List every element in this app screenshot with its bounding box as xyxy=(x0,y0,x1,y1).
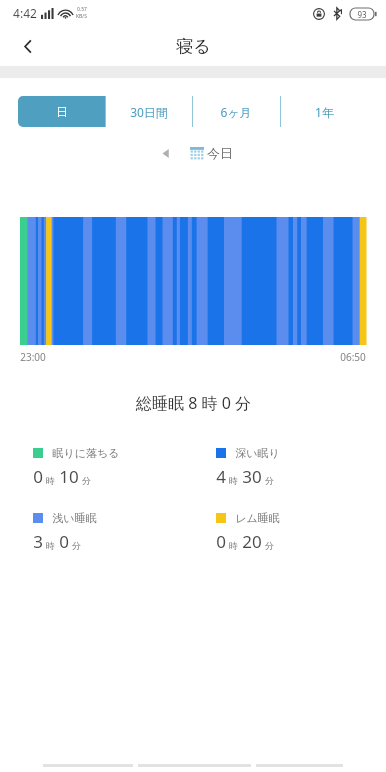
staticText: 6ヶ月 xyxy=(220,104,252,120)
staticText: 4:42 xyxy=(13,5,37,21)
staticText: 0 xyxy=(59,530,69,553)
staticText: レム睡眠 xyxy=(235,511,280,525)
button[interactable]: 深い眠り xyxy=(216,446,280,488)
staticText: 10 xyxy=(59,465,79,488)
button[interactable]: レム睡眠 xyxy=(216,511,280,553)
staticText: 眠りに落ちる xyxy=(52,446,120,460)
staticText: 93 xyxy=(357,9,367,20)
staticText: 0 xyxy=(33,465,43,488)
staticText: 0.57 xyxy=(77,6,87,13)
staticText: 20 xyxy=(242,530,262,553)
staticText: 総睡眠 8 時 0 分 xyxy=(136,392,251,414)
button[interactable]: 浅い睡眠 xyxy=(33,511,97,553)
staticText: 3 xyxy=(33,530,43,553)
staticText: 30 xyxy=(242,465,262,488)
staticText: 分 xyxy=(265,540,274,551)
staticText: 分 xyxy=(265,475,274,486)
button[interactable]: 6ヶ月 xyxy=(192,96,280,127)
staticText: 今日 xyxy=(207,145,233,161)
staticText: 時 xyxy=(46,540,55,551)
staticText: 06:50 xyxy=(340,350,366,364)
staticText: 0 xyxy=(216,530,226,553)
button[interactable]: 30日間 xyxy=(105,96,192,127)
button[interactable]: Back xyxy=(8,26,48,66)
button[interactable]: 今日 xyxy=(190,145,233,161)
staticText: 分 xyxy=(82,475,91,486)
staticText: 深い眠り xyxy=(235,446,280,460)
staticText: KB/S xyxy=(76,13,87,20)
staticText: 分 xyxy=(72,540,81,551)
button[interactable]: 1年 xyxy=(280,96,368,127)
staticText: 浅い睡眠 xyxy=(52,511,97,525)
staticText: 時 xyxy=(46,475,55,486)
button[interactable]: Previous day xyxy=(154,142,178,164)
staticText: 1年 xyxy=(315,104,334,120)
staticText: 時 xyxy=(229,540,238,551)
staticText: 23:00 xyxy=(20,350,46,364)
staticText: 寝る xyxy=(176,36,211,57)
button[interactable]: 日 xyxy=(18,96,105,127)
button[interactable]: 眠りに落ちる xyxy=(33,446,120,488)
staticText: 時 xyxy=(229,475,238,486)
staticText: 4 xyxy=(216,465,226,488)
staticText: 日 xyxy=(56,104,68,119)
staticText: 30日間 xyxy=(130,104,168,120)
